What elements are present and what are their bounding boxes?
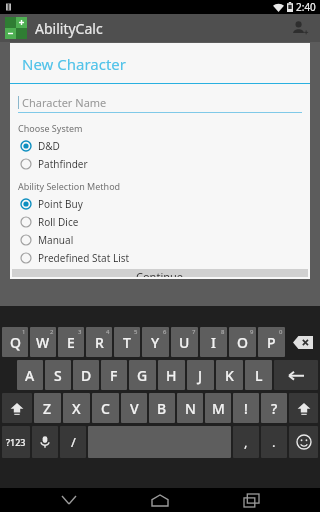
button[interactable]: Enter — [274, 360, 318, 390]
staticText: K — [225, 366, 234, 385]
staticText: R — [95, 333, 104, 352]
button[interactable]: V — [121, 393, 147, 423]
button[interactable]: S — [45, 360, 71, 390]
staticText: X — [72, 399, 81, 418]
staticText: Q — [10, 333, 21, 352]
button[interactable]: B — [149, 393, 175, 423]
staticText: ! — [244, 399, 248, 418]
staticText: D&D — [38, 139, 60, 153]
staticText: 3 — [78, 328, 82, 336]
staticText: 7 — [192, 328, 196, 336]
button[interactable]: R — [86, 327, 112, 357]
button[interactable]: Pathfinder — [18, 155, 302, 173]
staticText: J — [198, 366, 203, 385]
staticText: T — [123, 333, 131, 352]
staticText: Continue — [136, 269, 184, 277]
staticText: P — [267, 333, 276, 352]
staticText: O — [237, 333, 248, 352]
staticText: / — [71, 433, 76, 451]
staticText: Character Name — [22, 95, 107, 110]
button[interactable]: N — [177, 393, 203, 423]
staticText: H — [166, 366, 177, 385]
staticText: 2:40 — [296, 0, 316, 14]
staticText: U — [179, 333, 190, 352]
staticText: C — [101, 399, 110, 418]
button[interactable]: Y — [142, 327, 169, 357]
button[interactable]: A — [17, 360, 43, 390]
staticText: E — [67, 333, 75, 352]
staticText: 2 — [50, 328, 54, 336]
button[interactable]: Add character — [288, 16, 312, 40]
button[interactable]: / — [60, 426, 86, 458]
button[interactable]: Point Buy — [18, 195, 302, 213]
button[interactable]: Backspace — [287, 327, 318, 357]
button[interactable]: L — [245, 360, 272, 390]
staticText: A — [25, 366, 35, 385]
button[interactable]: D — [73, 360, 99, 390]
button[interactable]: M — [205, 393, 231, 423]
staticText: . — [272, 433, 276, 451]
staticText: 8 — [221, 328, 225, 336]
button[interactable]: K — [216, 360, 243, 390]
staticText: S — [54, 366, 62, 385]
button[interactable]: Emoji — [289, 426, 318, 458]
staticText: D — [81, 366, 92, 385]
staticText: New Character — [22, 54, 126, 74]
staticText: Predefined Stat List — [38, 251, 130, 265]
button[interactable]: Roll Dice — [18, 213, 302, 231]
button[interactable]: W — [30, 327, 56, 357]
button[interactable]: Predefined Stat List — [18, 249, 302, 267]
button[interactable]: Manual — [18, 231, 302, 249]
button[interactable]: G — [129, 360, 156, 390]
button[interactable]: Shift — [289, 393, 318, 423]
staticText: N — [185, 399, 196, 418]
button[interactable]: H — [158, 360, 185, 390]
button[interactable]: ? — [261, 393, 287, 423]
button[interactable]: P — [258, 327, 285, 357]
staticText: V — [130, 399, 139, 418]
button[interactable]: T — [114, 327, 140, 357]
button[interactable]: Home — [138, 488, 182, 512]
button[interactable]: E — [58, 327, 84, 357]
staticText: B — [157, 399, 167, 418]
staticText: Point Buy — [38, 197, 83, 211]
button[interactable]: Back — [47, 488, 91, 512]
staticText: AbilityCalc — [35, 19, 103, 38]
staticText: Y — [151, 333, 160, 352]
button[interactable]: X — [63, 393, 90, 423]
staticText: 4 — [106, 328, 110, 336]
button[interactable]: ! — [233, 393, 259, 423]
button[interactable]: Z — [34, 393, 61, 423]
button[interactable]: Recent apps — [229, 488, 273, 512]
button[interactable]: Q — [2, 327, 28, 357]
staticText: ? — [271, 399, 278, 418]
staticText: I — [211, 333, 216, 352]
staticText: Roll Dice — [38, 215, 79, 229]
button[interactable]: D&D — [18, 137, 302, 155]
button[interactable]: U — [171, 327, 198, 357]
button[interactable]: Voice input — [32, 426, 58, 458]
staticText: 1 — [22, 328, 26, 336]
staticText: 6 — [163, 328, 167, 336]
staticText: L — [255, 366, 263, 385]
staticText: Z — [43, 399, 52, 418]
button[interactable]: I — [200, 327, 227, 357]
staticText: G — [137, 366, 148, 385]
button[interactable]: . — [261, 426, 287, 458]
staticText: 5 — [134, 328, 138, 336]
button[interactable]: F — [101, 360, 127, 390]
staticText: W — [36, 333, 50, 352]
button[interactable]: C — [92, 393, 119, 423]
button[interactable]: Continue — [12, 269, 308, 277]
button[interactable]: J — [187, 360, 214, 390]
staticText: F — [110, 366, 118, 385]
staticText: ?123 — [6, 436, 26, 448]
staticText: Choose System — [18, 122, 83, 134]
button[interactable]: Character Name — [18, 92, 302, 112]
button[interactable]: Shift — [2, 393, 32, 423]
button[interactable]: ?123 — [2, 426, 30, 458]
button[interactable]: , — [233, 426, 259, 458]
button[interactable]: O — [229, 327, 256, 357]
staticText: M — [212, 399, 225, 418]
